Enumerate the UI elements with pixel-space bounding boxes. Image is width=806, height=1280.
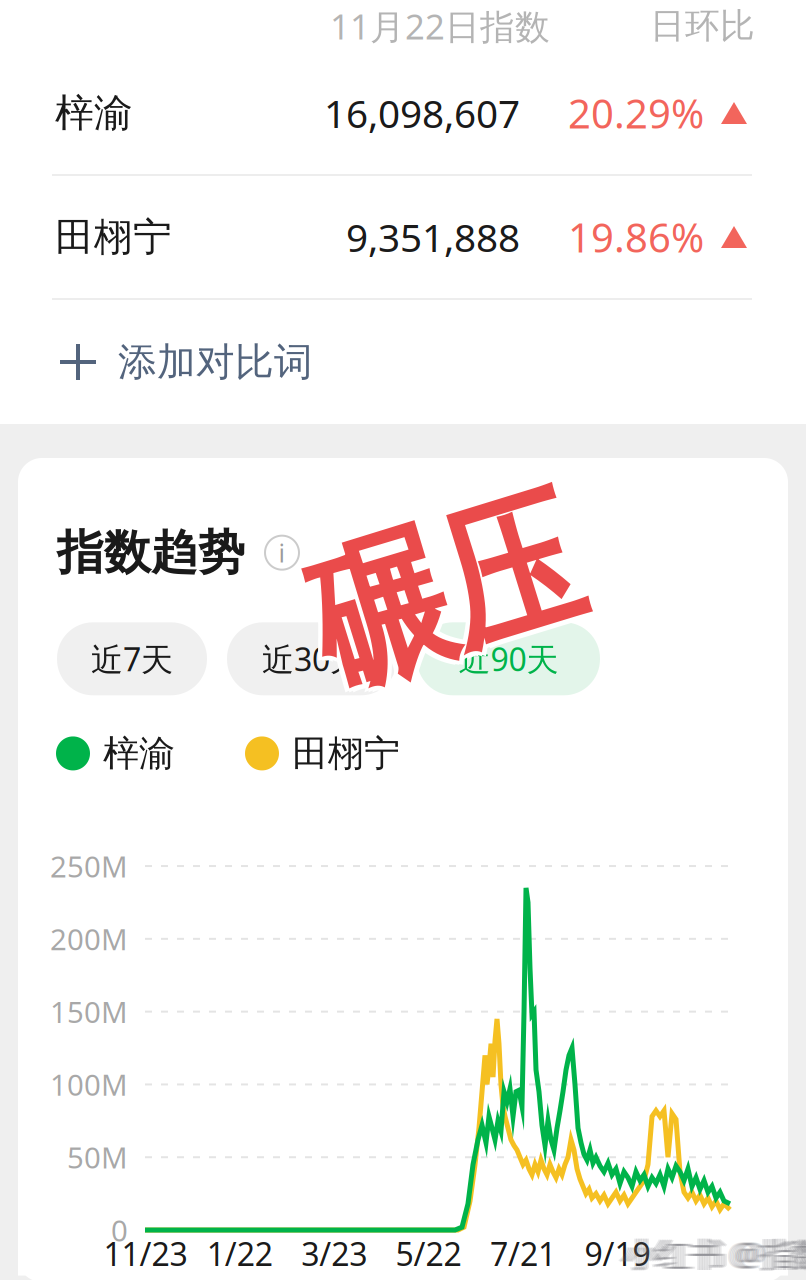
staticText: 碾压: [292, 493, 606, 686]
staticText: 指数趋势: [57, 524, 245, 581]
staticText: 小红书 @指数: [620, 1231, 806, 1276]
staticText: 小红书 @指数: [623, 1231, 806, 1276]
button[interactable]: 近30天: [227, 622, 397, 695]
staticText: 1/22: [207, 1232, 273, 1275]
staticText: 碾压: [292, 501, 606, 694]
staticText: 100M: [50, 1065, 128, 1104]
staticText: 19.86%: [568, 210, 704, 263]
staticText: 碾压: [288, 501, 602, 694]
staticText: 小红书 @指数: [625, 1231, 806, 1276]
staticText: 小红书 @指数: [621, 1231, 806, 1276]
staticText: 11月22日指数: [330, 3, 550, 49]
staticText: 5/22: [396, 1232, 462, 1275]
button[interactable]: 近90天: [417, 622, 600, 695]
staticText: 250M: [50, 847, 128, 886]
staticText: 小红书 @指数: [626, 1231, 806, 1276]
staticText: 16,098,607: [324, 87, 520, 139]
staticText: 碾压: [284, 501, 598, 694]
staticText: 添加对比词: [118, 338, 313, 386]
button[interactable]: 添加对比词: [0, 300, 806, 424]
staticText: 3/23: [301, 1232, 367, 1275]
staticText: 200M: [50, 919, 128, 958]
staticText: 碾压: [288, 497, 602, 690]
staticText: 日环比: [650, 5, 755, 47]
staticText: 9/19: [584, 1232, 650, 1275]
staticText: 田栩宁: [292, 731, 400, 775]
staticText: 7/21: [490, 1232, 556, 1275]
staticText: 梓渝: [103, 731, 175, 775]
staticText: 小红书 @指数: [628, 1231, 806, 1276]
staticText: 小红书 @指数: [630, 1231, 806, 1276]
staticText: 梓渝: [55, 89, 133, 137]
staticText: 20.29%: [568, 86, 704, 139]
staticText: i: [278, 536, 285, 569]
staticText: 碾压: [292, 497, 606, 690]
staticText: 50M: [67, 1138, 128, 1177]
staticText: 碾压: [284, 497, 598, 690]
staticText: 9,351,888: [346, 211, 520, 263]
staticText: 近90天: [458, 638, 558, 680]
button[interactable]: 近7天: [57, 622, 207, 695]
staticText: 近7天: [91, 638, 173, 680]
staticText: 碾压: [288, 493, 602, 686]
staticText: 150M: [50, 992, 128, 1031]
staticText: 近30天: [262, 638, 362, 680]
staticText: 小红书 @指数: [618, 1231, 806, 1276]
staticText: 碾压: [284, 493, 598, 686]
staticText: 碾压: [288, 497, 602, 690]
staticText: 11/23: [103, 1232, 187, 1275]
staticText: 田栩宁: [55, 213, 172, 261]
staticText: 0: [111, 1211, 128, 1250]
